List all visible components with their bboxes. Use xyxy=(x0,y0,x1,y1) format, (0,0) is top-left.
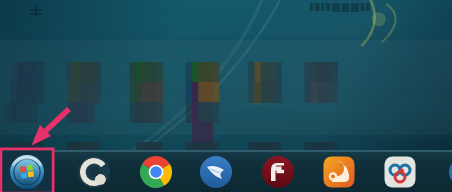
button[interactable]: Google Chrome xyxy=(128,152,184,192)
button[interactable]: More xyxy=(438,152,452,192)
button[interactable]: Baidu Netdisk xyxy=(372,152,428,192)
button[interactable]: Adobe Flash Player xyxy=(250,152,306,192)
button[interactable]: Sogou Browser xyxy=(188,152,244,192)
button[interactable]: 2345 Browser xyxy=(66,152,122,192)
button[interactable]: Start xyxy=(6,152,48,192)
button[interactable]: UC Browser xyxy=(311,152,367,192)
